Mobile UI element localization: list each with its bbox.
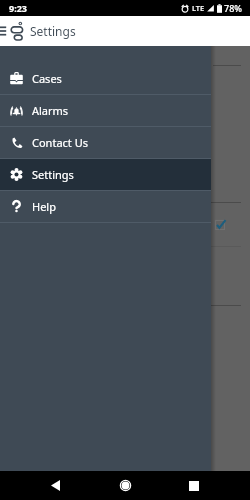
button[interactable]: Contact Us: [0, 127, 211, 158]
button[interactable]: Alarms: [0, 95, 211, 126]
button[interactable]: Open navigation drawer: [0, 16, 9, 46]
staticText: Help: [32, 199, 56, 214]
staticText: Alarms: [32, 103, 69, 118]
button[interactable]: Help: [0, 191, 211, 222]
button[interactable]: Cases: [0, 63, 211, 94]
button[interactable]: Home: [105, 471, 145, 500]
button[interactable]: Recents: [174, 471, 214, 500]
staticText: Cases: [32, 71, 62, 86]
staticText: 9:23: [9, 2, 27, 14]
staticText: Contact Us: [32, 135, 88, 150]
button[interactable]: Settings: [0, 159, 211, 190]
staticText: Settings: [32, 167, 74, 182]
staticText: Settings: [30, 23, 76, 39]
button[interactable]: Back: [35, 471, 75, 500]
staticText: LTE: [192, 3, 205, 13]
staticText: 78%: [224, 2, 242, 14]
